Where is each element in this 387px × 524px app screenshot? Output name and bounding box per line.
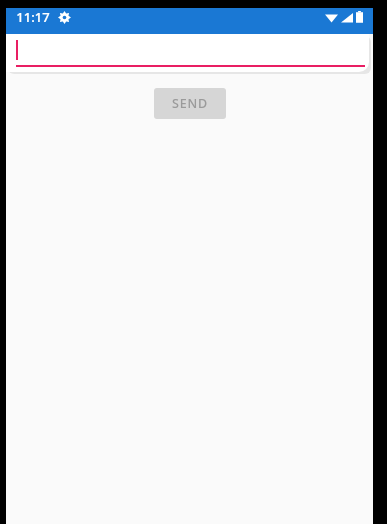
button[interactable] bbox=[6, 34, 369, 72]
button[interactable]: SEND bbox=[154, 88, 226, 119]
other: Settings bbox=[58, 11, 71, 24]
staticText: 11:17 bbox=[16, 8, 50, 26]
staticText: SEND bbox=[172, 95, 208, 112]
